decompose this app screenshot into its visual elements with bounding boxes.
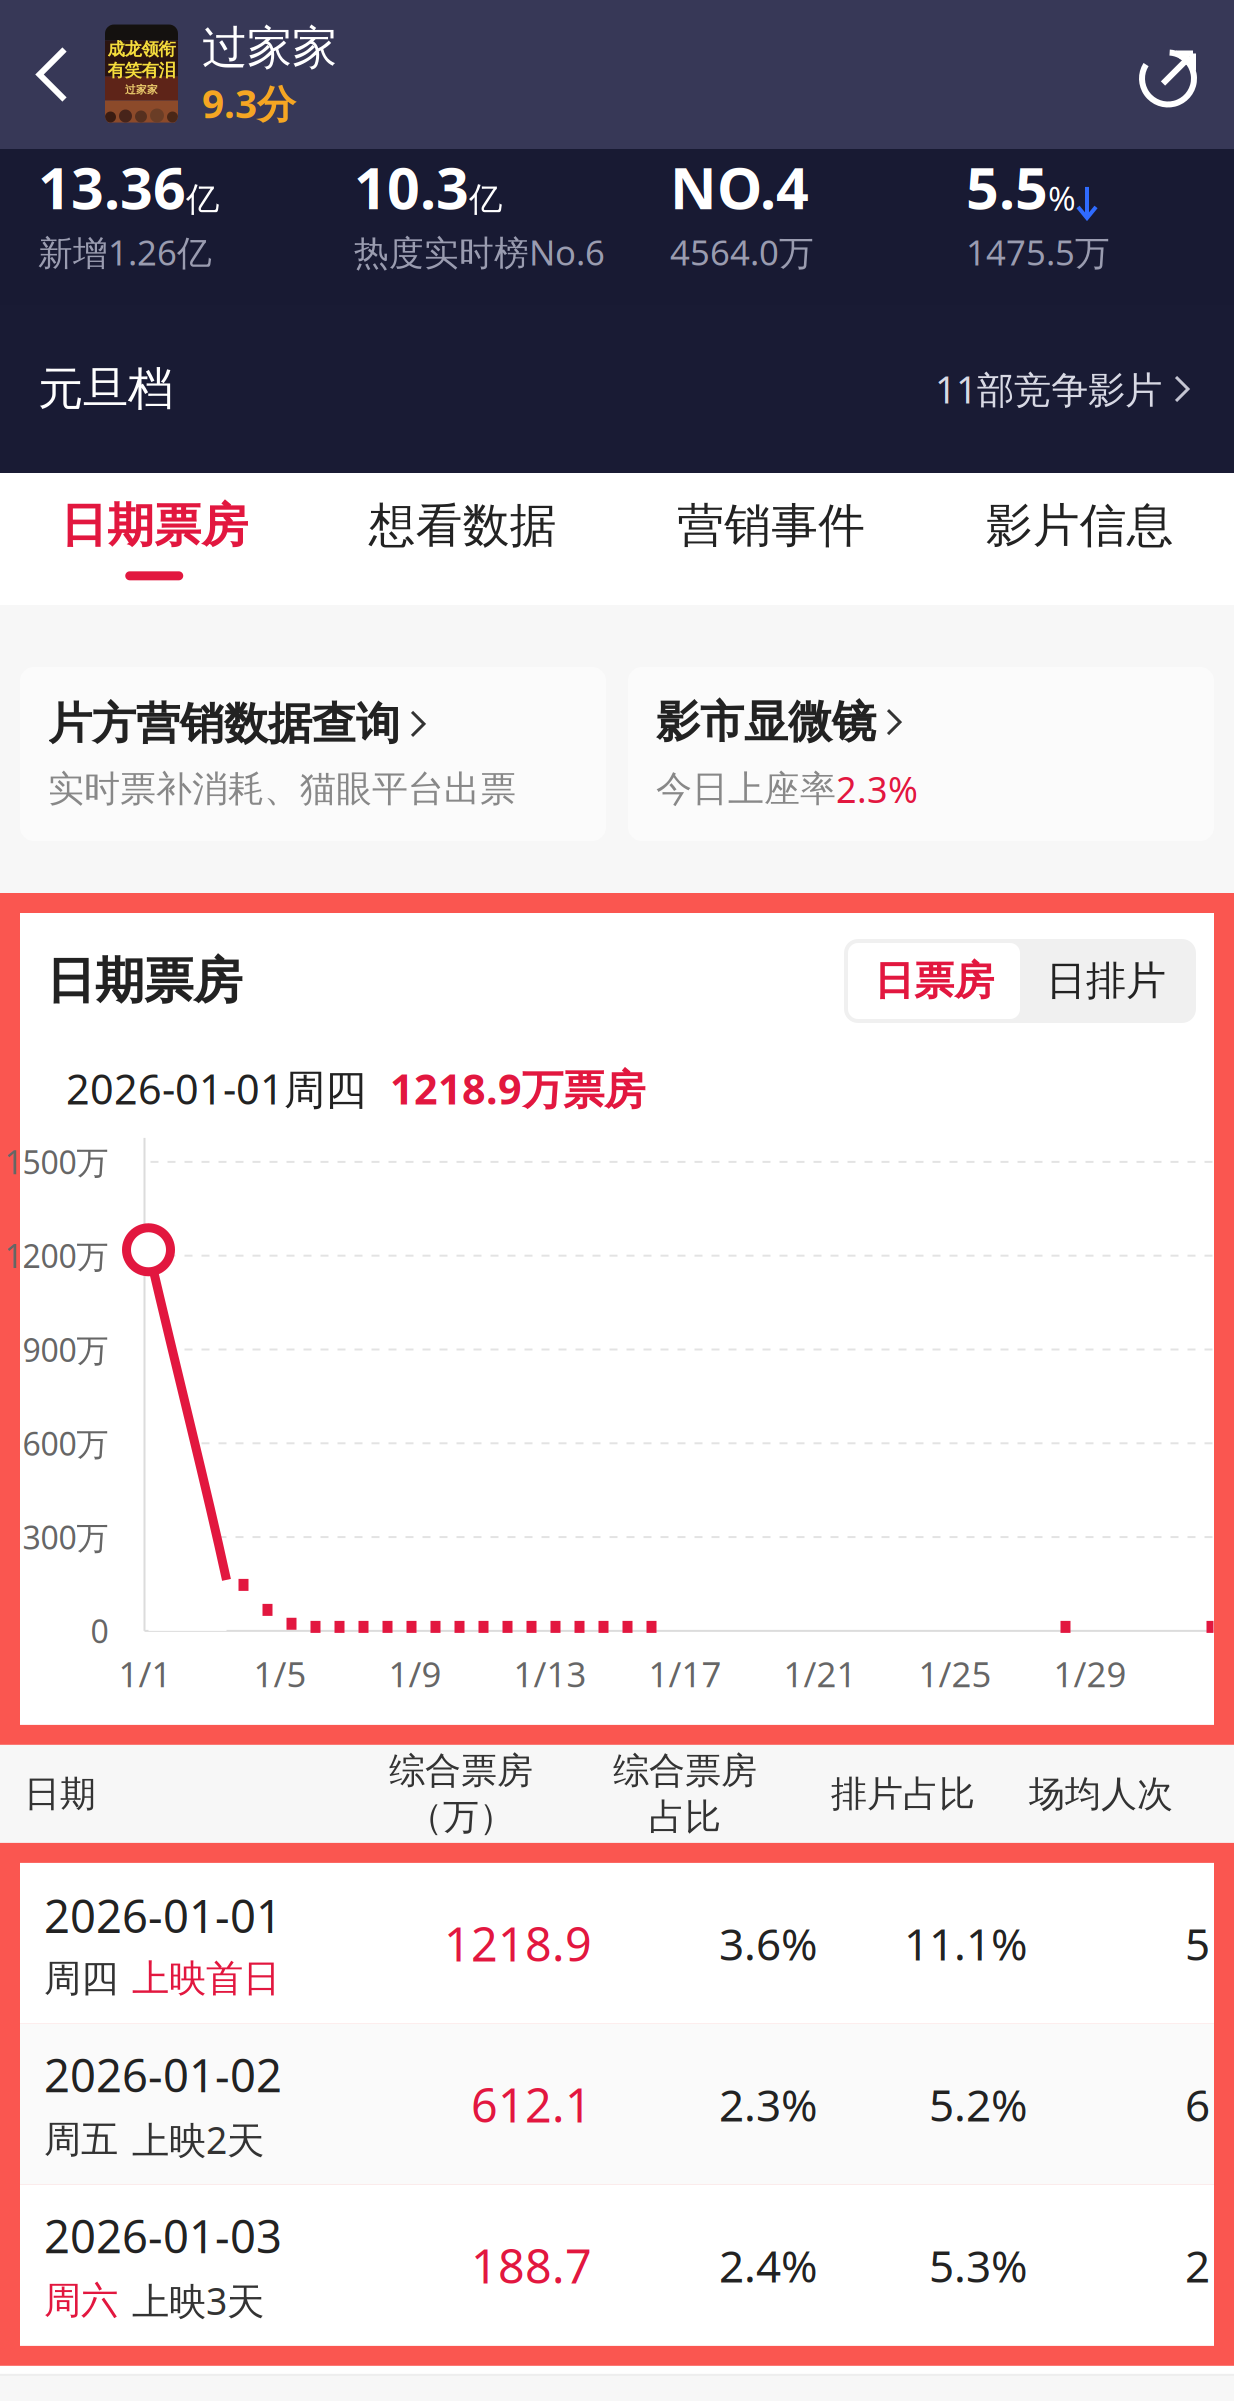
staticText: 11部竞争影片 (935, 364, 1162, 414)
staticText: 周五 (44, 2117, 118, 2162)
staticText: 1/17 (648, 1651, 721, 1697)
staticText: 5.5 (966, 149, 1048, 225)
button[interactable]: 2026-01-01 (20, 1863, 1214, 2024)
staticText: 周六 (44, 2278, 118, 2323)
staticText: 周四 (44, 1956, 118, 2001)
staticText: 今日上座率 (656, 767, 836, 811)
staticText: NO.4 (670, 149, 809, 225)
staticText: 影片信息 (986, 497, 1174, 554)
staticText: 热度实时榜No.6 (354, 229, 605, 275)
staticText: 5.3% (929, 2236, 1028, 2295)
button[interactable]: 2026-01-03 (20, 2185, 1214, 2346)
button[interactable]: 2026-01-02 (20, 2024, 1214, 2185)
staticText: 综合票房 (389, 1749, 533, 1793)
button[interactable]: 元旦档 (0, 305, 1234, 473)
staticText: 1475.5万 (966, 229, 1110, 275)
staticText: 2.3% (719, 2075, 818, 2134)
staticText: 6 (1185, 2075, 1210, 2134)
staticText: 上映2天 (132, 2115, 264, 2164)
button[interactable]: 影市显微镜 (628, 667, 1214, 841)
staticText: 场均人次 (1029, 1772, 1173, 1816)
button[interactable]: 日票房 (848, 943, 1020, 1019)
staticText: 1/9 (388, 1651, 441, 1697)
staticText: 亿 (186, 179, 219, 220)
staticText: 1/13 (513, 1651, 586, 1697)
staticText: 2026-01-01 (44, 1885, 282, 1946)
staticText: 1/29 (1053, 1651, 1126, 1697)
staticText: 上映首日 (132, 1956, 280, 2001)
staticText: 2.4% (719, 2236, 818, 2295)
button[interactable]: Share (1114, 0, 1234, 149)
button[interactable]: 片方营销数据查询 (20, 667, 606, 841)
button[interactable]: Back (0, 0, 105, 149)
staticText: 日期票房 (46, 951, 242, 1011)
button[interactable]: 日期票房 (0, 473, 308, 605)
staticText: 排片占比 (831, 1772, 975, 1816)
staticText: 5.2% (929, 2075, 1028, 2134)
staticText: 600万 (22, 1422, 108, 1464)
staticText: % (1048, 176, 1076, 220)
staticText: 占比 (649, 1795, 721, 1839)
staticText: 新增1.26亿 (38, 229, 212, 275)
staticText: 影市显微镜 (656, 695, 876, 749)
staticText: 亿 (469, 179, 502, 220)
button[interactable]: 影片信息 (925, 473, 1234, 605)
staticText: 成龙领衔 (107, 38, 175, 60)
staticText: 1200万 (4, 1234, 108, 1277)
button[interactable]: 想看数据 (308, 473, 617, 605)
staticText: 612.1 (471, 2073, 592, 2135)
button[interactable]: 日排片 (1020, 943, 1192, 1019)
staticText: 0 (90, 1610, 108, 1652)
staticText: 1218.9万票房 (390, 1061, 645, 1116)
staticText: 片方营销数据查询 (48, 697, 400, 751)
staticText: 1500万 (4, 1141, 108, 1183)
staticText: 1/25 (918, 1651, 991, 1697)
staticText: 1/5 (253, 1651, 306, 1697)
staticText: 有笑有泪 (107, 60, 175, 81)
staticText: 900万 (22, 1328, 108, 1371)
button[interactable]: 营销事件 (617, 473, 925, 605)
staticText: 日期票房 (60, 497, 248, 554)
staticText: 2026-01-03 (44, 2205, 282, 2266)
staticText: 营销事件 (677, 497, 865, 554)
staticText: 元旦档 (38, 361, 173, 417)
staticText: 过家家 (125, 83, 158, 96)
staticText: 4564.0万 (670, 229, 814, 275)
staticText: （万） (407, 1795, 515, 1839)
staticText: 300万 (22, 1516, 108, 1558)
staticText: 5 (1185, 1914, 1210, 1973)
staticText: 1/21 (783, 1651, 856, 1697)
staticText: 综合票房 (613, 1749, 757, 1793)
staticText: 2 (1185, 2236, 1210, 2295)
staticText: 2026-01-01周四 (66, 1061, 366, 1116)
staticText: 9.3分 (202, 78, 296, 129)
staticText: 1218.9 (444, 1912, 592, 1974)
staticText: 日票房 (874, 956, 994, 1005)
staticText: 实时票补消耗、猫眼平台出票 (48, 767, 516, 811)
staticText: 3.6% (719, 1914, 818, 1973)
staticText: 2026-01-02 (44, 2044, 282, 2105)
staticText: 2.3% (836, 765, 918, 813)
staticText: 上映3天 (132, 2276, 264, 2325)
staticText: 188.7 (471, 2234, 592, 2296)
staticText: 10.3 (354, 149, 469, 225)
staticText: 13.36 (38, 149, 186, 225)
staticText: 日排片 (1046, 956, 1166, 1005)
staticText: 想看数据 (369, 497, 557, 554)
staticText: 11.1% (904, 1914, 1028, 1973)
staticText: 1/1 (118, 1651, 171, 1697)
staticText: 日期 (24, 1772, 96, 1816)
staticText: 过家家 (202, 20, 337, 76)
